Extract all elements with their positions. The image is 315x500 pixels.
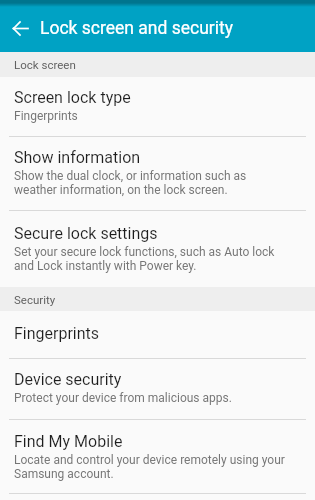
- staticText: Set your secure lock functions, such as …: [14, 245, 275, 273]
- staticText: Security: [14, 293, 56, 306]
- staticText: Secure lock settings: [14, 224, 158, 243]
- staticText: Protect your device from malicious apps.: [14, 391, 232, 405]
- staticText: Locate and control your device remotely …: [14, 453, 285, 481]
- button[interactable]: Secure lock settings: [0, 211, 315, 287]
- staticText: Fingerprints: [14, 324, 100, 343]
- button[interactable]: Show information: [0, 137, 315, 210]
- button[interactable]: Screen lock type: [0, 77, 315, 136]
- staticText: Lock screen: [14, 58, 76, 71]
- staticText: Device security: [14, 370, 122, 389]
- button[interactable]: Device security: [0, 359, 315, 419]
- staticText: Show the dual clock, or information such…: [14, 169, 247, 197]
- staticText: Lock screen and security: [40, 18, 234, 39]
- staticText: Find My Mobile: [14, 432, 123, 451]
- button[interactable]: Find My Mobile: [0, 420, 315, 493]
- staticText: Screen lock type: [14, 88, 131, 107]
- staticText: Fingerprints: [14, 109, 78, 123]
- staticText: Show information: [14, 148, 141, 167]
- button[interactable]: [0, 4, 40, 52]
- button[interactable]: Fingerprints: [0, 311, 315, 358]
